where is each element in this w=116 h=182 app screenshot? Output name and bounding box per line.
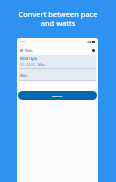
- button[interactable]: 500 M / Split: [19, 55, 96, 69]
- staticText: 12:00: [20, 40, 26, 43]
- staticText: Mins: [38, 63, 45, 67]
- staticText: Watts: [20, 74, 28, 78]
- other: More options: [92, 49, 95, 52]
- staticText: Convert between pace and watts: [13, 9, 103, 28]
- button[interactable]: Calculate: [18, 91, 97, 100]
- staticText: 500 M / Split: [20, 57, 37, 61]
- staticText: Calculate: [52, 94, 63, 97]
- staticText: Watts: [25, 49, 33, 53]
- staticText: 00 : 00:00: [20, 62, 36, 67]
- button[interactable]: Watts: [20, 46, 95, 55]
- button[interactable]: Watts: [19, 69, 96, 81]
